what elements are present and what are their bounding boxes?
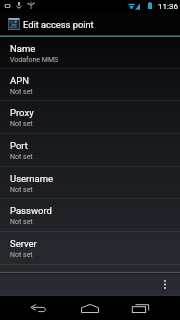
button[interactable]: More options [150, 274, 180, 295]
staticText: Not set [10, 88, 33, 96]
staticText: Password [10, 205, 52, 216]
staticText: Not set [10, 153, 33, 161]
staticText: Username [10, 173, 54, 184]
staticText: Server [10, 238, 37, 249]
staticText: Edit access point [23, 19, 94, 30]
button[interactable]: Port [0, 134, 180, 167]
staticText: Not set [10, 186, 33, 194]
staticText: Proxy [10, 107, 34, 118]
button[interactable]: Server [0, 232, 180, 265]
button[interactable]: Home [70, 296, 110, 320]
staticText: 11:36 [158, 2, 178, 11]
staticText: Name [10, 43, 36, 54]
button[interactable]: Username [0, 167, 180, 199]
staticText: Not set [10, 251, 33, 259]
staticText: Not set [10, 120, 33, 128]
button[interactable]: Name [0, 37, 180, 69]
button[interactable]: Proxy [0, 101, 180, 134]
staticText: Vodafone MMS [10, 56, 59, 64]
staticText: Not set [10, 218, 33, 226]
staticText: APN [10, 75, 29, 86]
button[interactable]: Recent apps [120, 296, 160, 320]
other: Access point settings icon [8, 18, 20, 30]
button[interactable]: Back [18, 296, 58, 320]
button[interactable]: APN [0, 69, 180, 101]
staticText: Port [10, 140, 28, 151]
button[interactable]: Password [0, 199, 180, 232]
